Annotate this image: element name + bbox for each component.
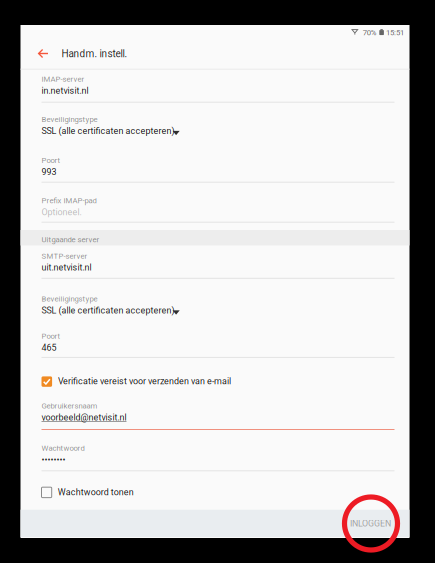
staticText: SSL (alle certificaten accepteren): [41, 305, 174, 316]
staticText: IMAP-server: [41, 75, 84, 84]
button[interactable]: Poort: [41, 332, 394, 362]
staticText: Gebruikersnaam: [41, 401, 97, 410]
button[interactable]: Beveiligingstype: [41, 294, 394, 324]
staticText: SSL (alle certificaten accepteren): [41, 126, 174, 136]
button[interactable]: Gebruikersnaam: [41, 401, 394, 431]
button[interactable]: Beveiligingstype: [41, 115, 394, 145]
button[interactable]: IMAP-server: [41, 75, 394, 105]
button[interactable]: SMTP-server: [41, 251, 394, 281]
staticText: ••••••••: [41, 454, 65, 465]
staticText: 465: [41, 342, 56, 353]
button[interactable]: Verificatie vereist voor verzenden van e…: [41, 374, 394, 390]
staticText: Prefix IMAP-pad: [41, 196, 96, 205]
staticText: Handm. instell.: [61, 48, 127, 60]
staticText: SMTP-server: [41, 251, 87, 261]
staticText: Uitgaande server: [41, 235, 99, 244]
staticText: voorbeeld@netvisit.nl: [41, 412, 126, 423]
button[interactable]: Poort: [41, 156, 394, 186]
staticText: Wachtwoord tonen: [58, 487, 134, 497]
staticText: 70%: [363, 28, 377, 37]
staticText: Beveiligingstype: [41, 294, 97, 303]
button[interactable]: INLOGGEN: [337, 512, 403, 534]
button[interactable]: Wachtwoord: [41, 443, 394, 473]
staticText: Poort: [41, 332, 60, 341]
staticText: 993: [41, 167, 56, 177]
button[interactable]: Prefix IMAP-pad: [41, 196, 394, 226]
staticText: INLOGGEN: [350, 518, 391, 529]
staticText: Wachtwoord: [41, 443, 84, 453]
button[interactable]: Back: [27, 39, 59, 68]
staticText: Optioneel.: [41, 207, 81, 217]
staticText: in.netvisit.nl: [41, 85, 88, 96]
staticText: Verificatie vereist voor verzenden van e…: [58, 376, 231, 387]
button[interactable]: Wachtwoord tonen: [41, 484, 394, 500]
staticText: uit.netvisit.nl: [41, 262, 91, 273]
staticText: 15:51: [386, 28, 404, 37]
staticText: Poort: [41, 156, 60, 165]
staticText: Beveiligingstype: [41, 115, 97, 124]
